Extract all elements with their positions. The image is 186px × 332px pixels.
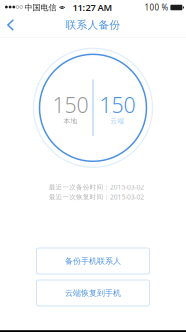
staticText: 最近一次备份时间：2015-03-02 — [49, 183, 144, 191]
staticText: 11:27 AM — [72, 1, 112, 14]
button[interactable]: Back — [0, 15, 25, 37]
staticText: 中国电信 — [23, 3, 59, 12]
staticText: 100 % — [144, 2, 168, 13]
staticText: 云端 — [110, 117, 124, 125]
staticText: 联系人备份 — [65, 18, 120, 31]
button[interactable]: 云端恢复到手机 — [36, 280, 149, 306]
staticText: 最近一次恢复时间：2015-03-02 — [49, 192, 144, 201]
staticText: 150 — [99, 90, 135, 119]
staticText: 本地 — [63, 117, 77, 125]
staticText: 云端恢复到手机 — [65, 288, 121, 298]
staticText: 备份手机联系人 — [65, 256, 121, 266]
button[interactable]: 备份手机联系人 — [36, 248, 149, 274]
staticText: 150 — [52, 90, 88, 119]
